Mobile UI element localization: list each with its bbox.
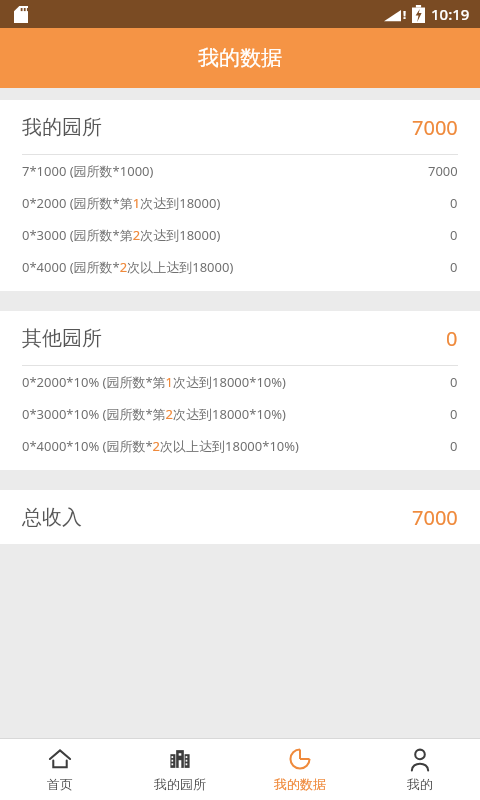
staticText: 7000 — [428, 162, 458, 180]
staticText: 10:19 — [431, 4, 470, 24]
staticText: 其他园所 — [22, 326, 446, 351]
button[interactable]: 我的数据 — [240, 739, 360, 800]
staticText: 0 — [450, 258, 458, 276]
staticText: 0*4000*10% (园所数*2次以上达到18000*10%) — [22, 437, 450, 455]
staticText: 我的数据 — [198, 45, 282, 71]
staticText: 我的园所 — [22, 115, 412, 140]
staticText: 0 — [450, 194, 458, 212]
staticText: 我的 — [407, 776, 433, 792]
staticText: 7000 — [412, 114, 458, 141]
staticText: 我的园所 — [154, 776, 206, 792]
staticText: 0*2000*10% (园所数*第1次达到18000*10%) — [22, 373, 450, 391]
staticText: 7*1000 (园所数*1000) — [22, 162, 428, 180]
button[interactable]: 其他园所 — [0, 311, 480, 470]
staticText: 0 — [450, 373, 458, 391]
button[interactable]: 首页 — [0, 739, 120, 800]
staticText: 0*3000 (园所数*第2次达到18000) — [22, 226, 450, 244]
staticText: 首页 — [47, 776, 73, 792]
staticText: 0 — [450, 405, 458, 423]
staticText: 0 — [446, 325, 458, 352]
staticText: 0 — [450, 437, 458, 455]
button[interactable]: 我的园所 — [120, 739, 240, 800]
staticText: 0 — [450, 226, 458, 244]
staticText: 0*2000 (园所数*第1次达到18000) — [22, 194, 450, 212]
staticText: 0*4000 (园所数*2次以上达到18000) — [22, 258, 450, 276]
button[interactable]: 总收入 — [0, 490, 480, 544]
staticText: 我的数据 — [274, 776, 326, 792]
button[interactable]: 我的园所 — [0, 100, 480, 291]
staticText: 0*3000*10% (园所数*第2次达到18000*10%) — [22, 405, 450, 423]
staticText: 7000 — [412, 504, 458, 531]
staticText: 总收入 — [22, 505, 412, 530]
staticText: ! — [403, 7, 407, 22]
button[interactable]: 我的 — [360, 739, 480, 800]
